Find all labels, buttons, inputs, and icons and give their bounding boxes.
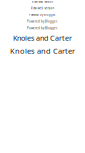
staticText: Knoles and Carter (10, 46, 75, 56)
staticText: Powered by Blogger. (29, 13, 56, 17)
staticText: Powered by Blogger. (27, 19, 58, 23)
staticText: View web version (30, 6, 54, 10)
staticText: Powered by Blogger. (27, 26, 58, 30)
staticText: Knoles and Carter (13, 33, 72, 43)
staticText: View web version (31, 0, 53, 3)
